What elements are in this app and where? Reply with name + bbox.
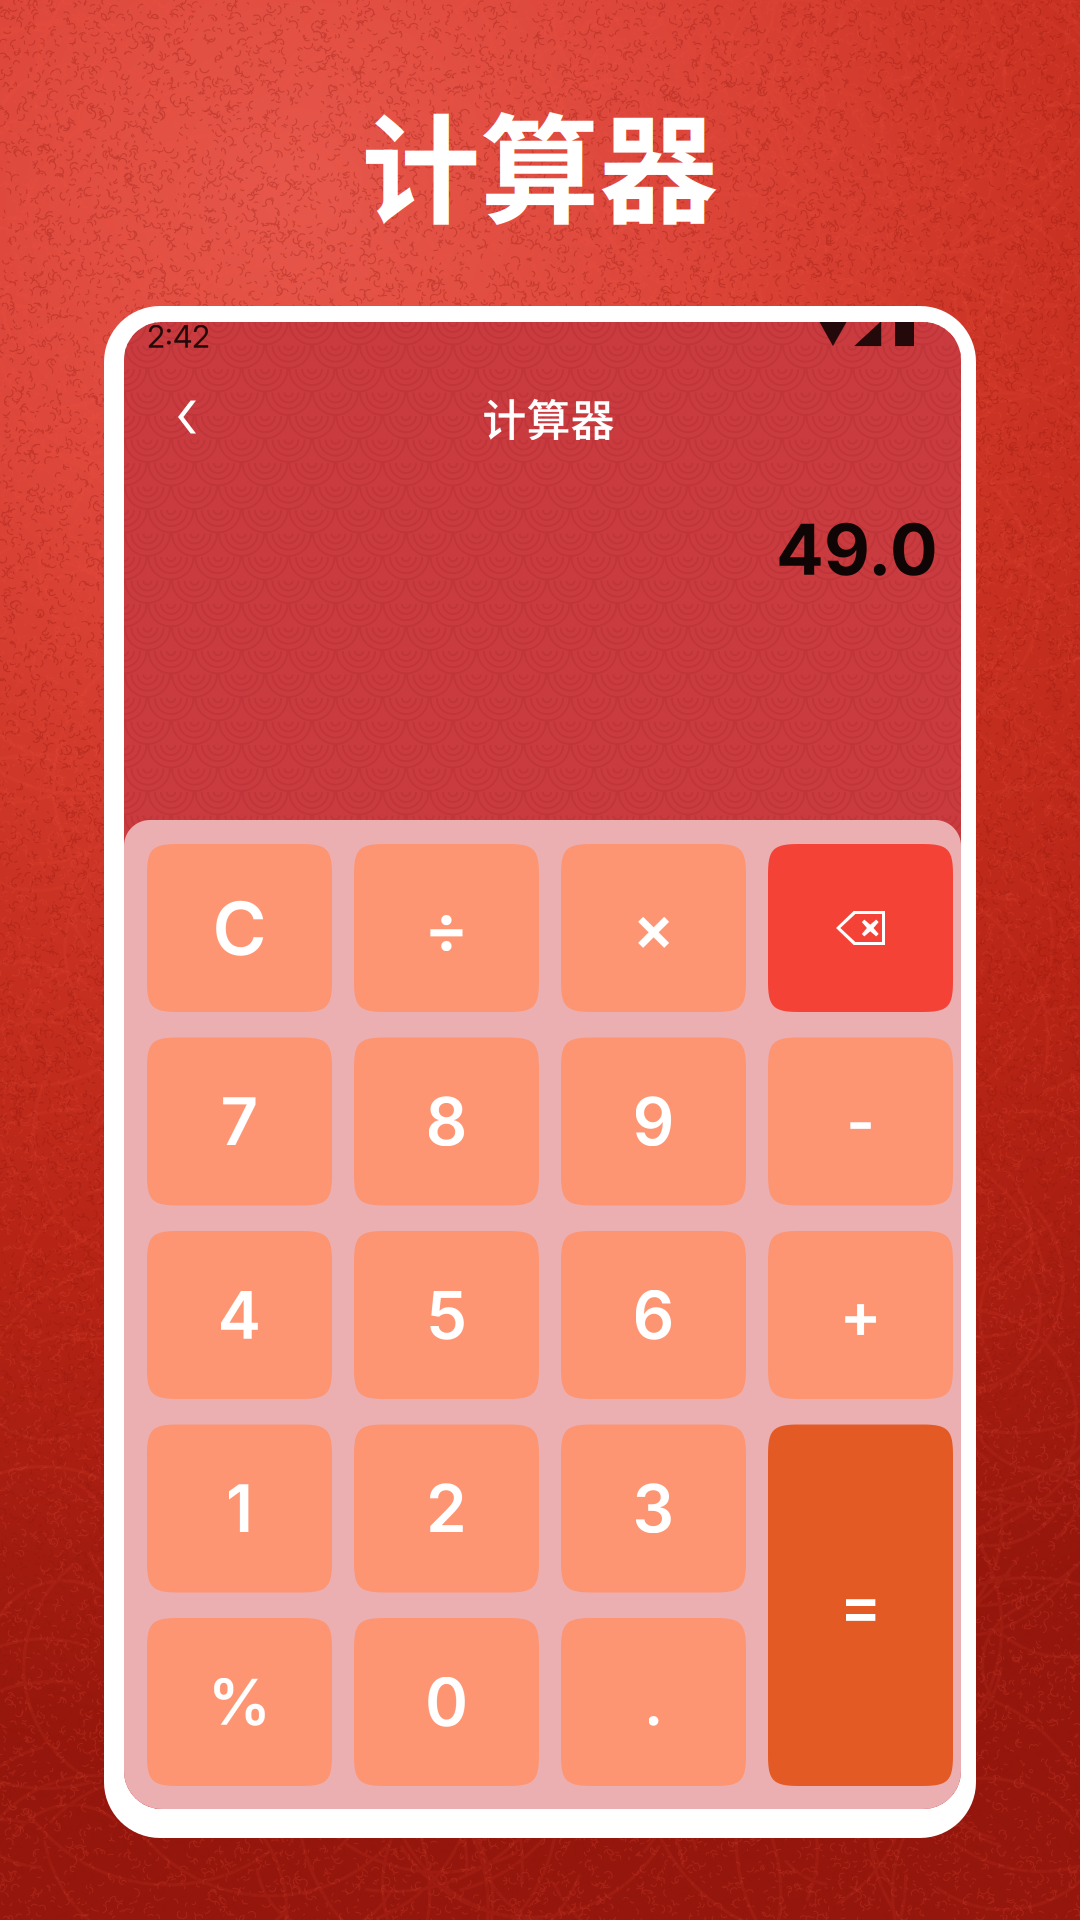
button[interactable]: 6 (561, 1231, 746, 1399)
button[interactable]: ÷ (354, 844, 539, 1012)
button[interactable]: C (147, 844, 332, 1012)
staticText: % (208, 1664, 271, 1740)
staticText: × (632, 890, 674, 966)
staticText: 计算器 (482, 385, 614, 449)
staticText: 6 (632, 1275, 674, 1354)
button[interactable]: = (768, 1424, 953, 1786)
staticText: 计算器 (361, 76, 718, 248)
button[interactable]: % (147, 1618, 332, 1786)
button[interactable]: 7 (147, 1037, 332, 1205)
staticText: 3 (632, 1469, 674, 1548)
staticText: 2 (426, 1469, 467, 1548)
staticText: ÷ (424, 888, 469, 968)
staticText: 5 (426, 1275, 467, 1354)
button[interactable]: Delete (768, 844, 953, 1012)
staticText: C (212, 884, 266, 972)
button[interactable]: . (561, 1618, 746, 1786)
staticText: 2:42 (147, 318, 210, 355)
staticText: 4 (217, 1275, 261, 1354)
button[interactable]: 9 (561, 1037, 746, 1205)
staticText: 0 (425, 1662, 468, 1741)
staticText: . (643, 1664, 663, 1740)
button[interactable]: 4 (147, 1231, 332, 1399)
button[interactable]: 2 (354, 1424, 539, 1592)
button[interactable]: 1 (147, 1424, 332, 1592)
button[interactable]: × (561, 844, 746, 1012)
staticText: 8 (425, 1082, 467, 1161)
staticText: = (839, 1567, 881, 1643)
button[interactable]: 8 (354, 1037, 539, 1205)
staticText: 7 (220, 1082, 258, 1161)
staticText: 9 (632, 1082, 674, 1161)
button[interactable]: 0 (354, 1618, 539, 1786)
button[interactable]: + (768, 1231, 953, 1399)
staticText: + (839, 1277, 881, 1353)
staticText: 49.0 (776, 506, 938, 592)
staticText: - (846, 1084, 875, 1159)
button[interactable]: - (768, 1037, 953, 1205)
button[interactable]: 5 (354, 1231, 539, 1399)
staticText: 1 (225, 1469, 253, 1548)
button[interactable]: 3 (561, 1424, 746, 1592)
button[interactable]: Back (124, 362, 250, 471)
